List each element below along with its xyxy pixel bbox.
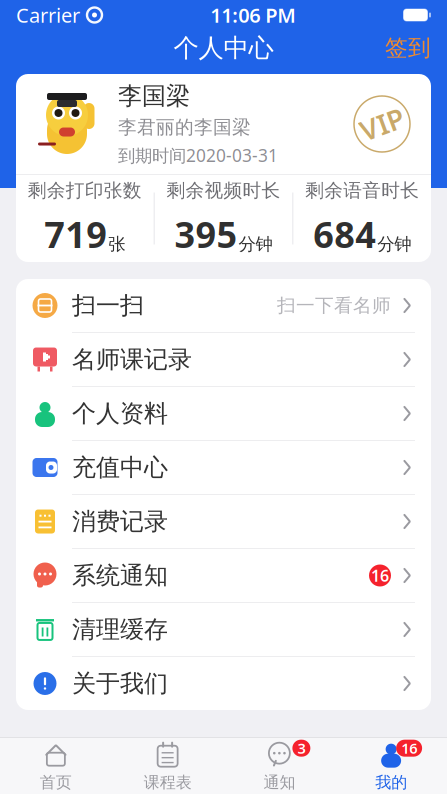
button[interactable]: 系统通知 (16, 549, 431, 603)
button[interactable]: 消费记录 (16, 495, 431, 549)
staticText: 签到 (385, 34, 431, 62)
staticText (80, 0, 86, 30)
button[interactable]: 首页 (0, 738, 112, 794)
staticText: VIP (359, 105, 404, 143)
staticText: 剩余打印张数 (28, 179, 142, 202)
staticText: 我的 (375, 773, 407, 792)
staticText: 395 (174, 210, 237, 258)
staticText: 名师课记录 (72, 345, 192, 374)
staticText: 消费记录 (72, 507, 168, 536)
button[interactable]: 充值中心 (16, 441, 431, 495)
button[interactable]: 课程表 (112, 738, 224, 794)
button[interactable]: 签到 (369, 26, 447, 70)
staticText: 3 (297, 738, 305, 758)
staticText: 分钟 (377, 234, 411, 255)
button[interactable]: 个人资料 (16, 387, 431, 441)
button[interactable]: 清理缓存 (16, 603, 431, 657)
staticText: 到期时间2020-03-31 (118, 144, 278, 167)
staticText: 扫一下看名师 (277, 294, 391, 317)
button[interactable]: 关于我们 (16, 657, 431, 710)
staticText: 李国梁 (118, 81, 190, 111)
staticText: 16 (401, 738, 417, 758)
staticText: 684 (313, 210, 376, 258)
staticText: 11:06 PM (210, 2, 296, 28)
button[interactable]: 扫一扫 (16, 279, 431, 333)
staticText: 分钟 (238, 234, 272, 255)
staticText: 扫一扫 (72, 291, 144, 320)
button[interactable]: 16 (335, 738, 447, 794)
staticText: 关于我们 (72, 669, 168, 698)
button[interactable]: 3 (223, 738, 335, 794)
staticText: 课程表 (144, 773, 192, 792)
staticText: 剩余视频时长 (166, 179, 280, 202)
staticText: 首页 (40, 773, 72, 792)
staticText: 张 (108, 234, 125, 255)
staticText: 719 (44, 210, 107, 258)
staticText: 16 (371, 565, 389, 586)
staticText: 系统通知 (72, 561, 168, 590)
staticText: 个人中心 (173, 32, 273, 63)
staticText: 李君丽的李国梁 (118, 116, 251, 139)
staticText: Carrier (16, 2, 80, 28)
button[interactable]: 名师课记录 (16, 333, 431, 387)
staticText: 剩余语音时长 (305, 179, 419, 202)
staticText: 清理缓存 (72, 615, 168, 644)
staticText: 充值中心 (72, 453, 168, 482)
staticText: 个人资料 (72, 399, 168, 428)
staticText: 通知 (263, 773, 295, 792)
